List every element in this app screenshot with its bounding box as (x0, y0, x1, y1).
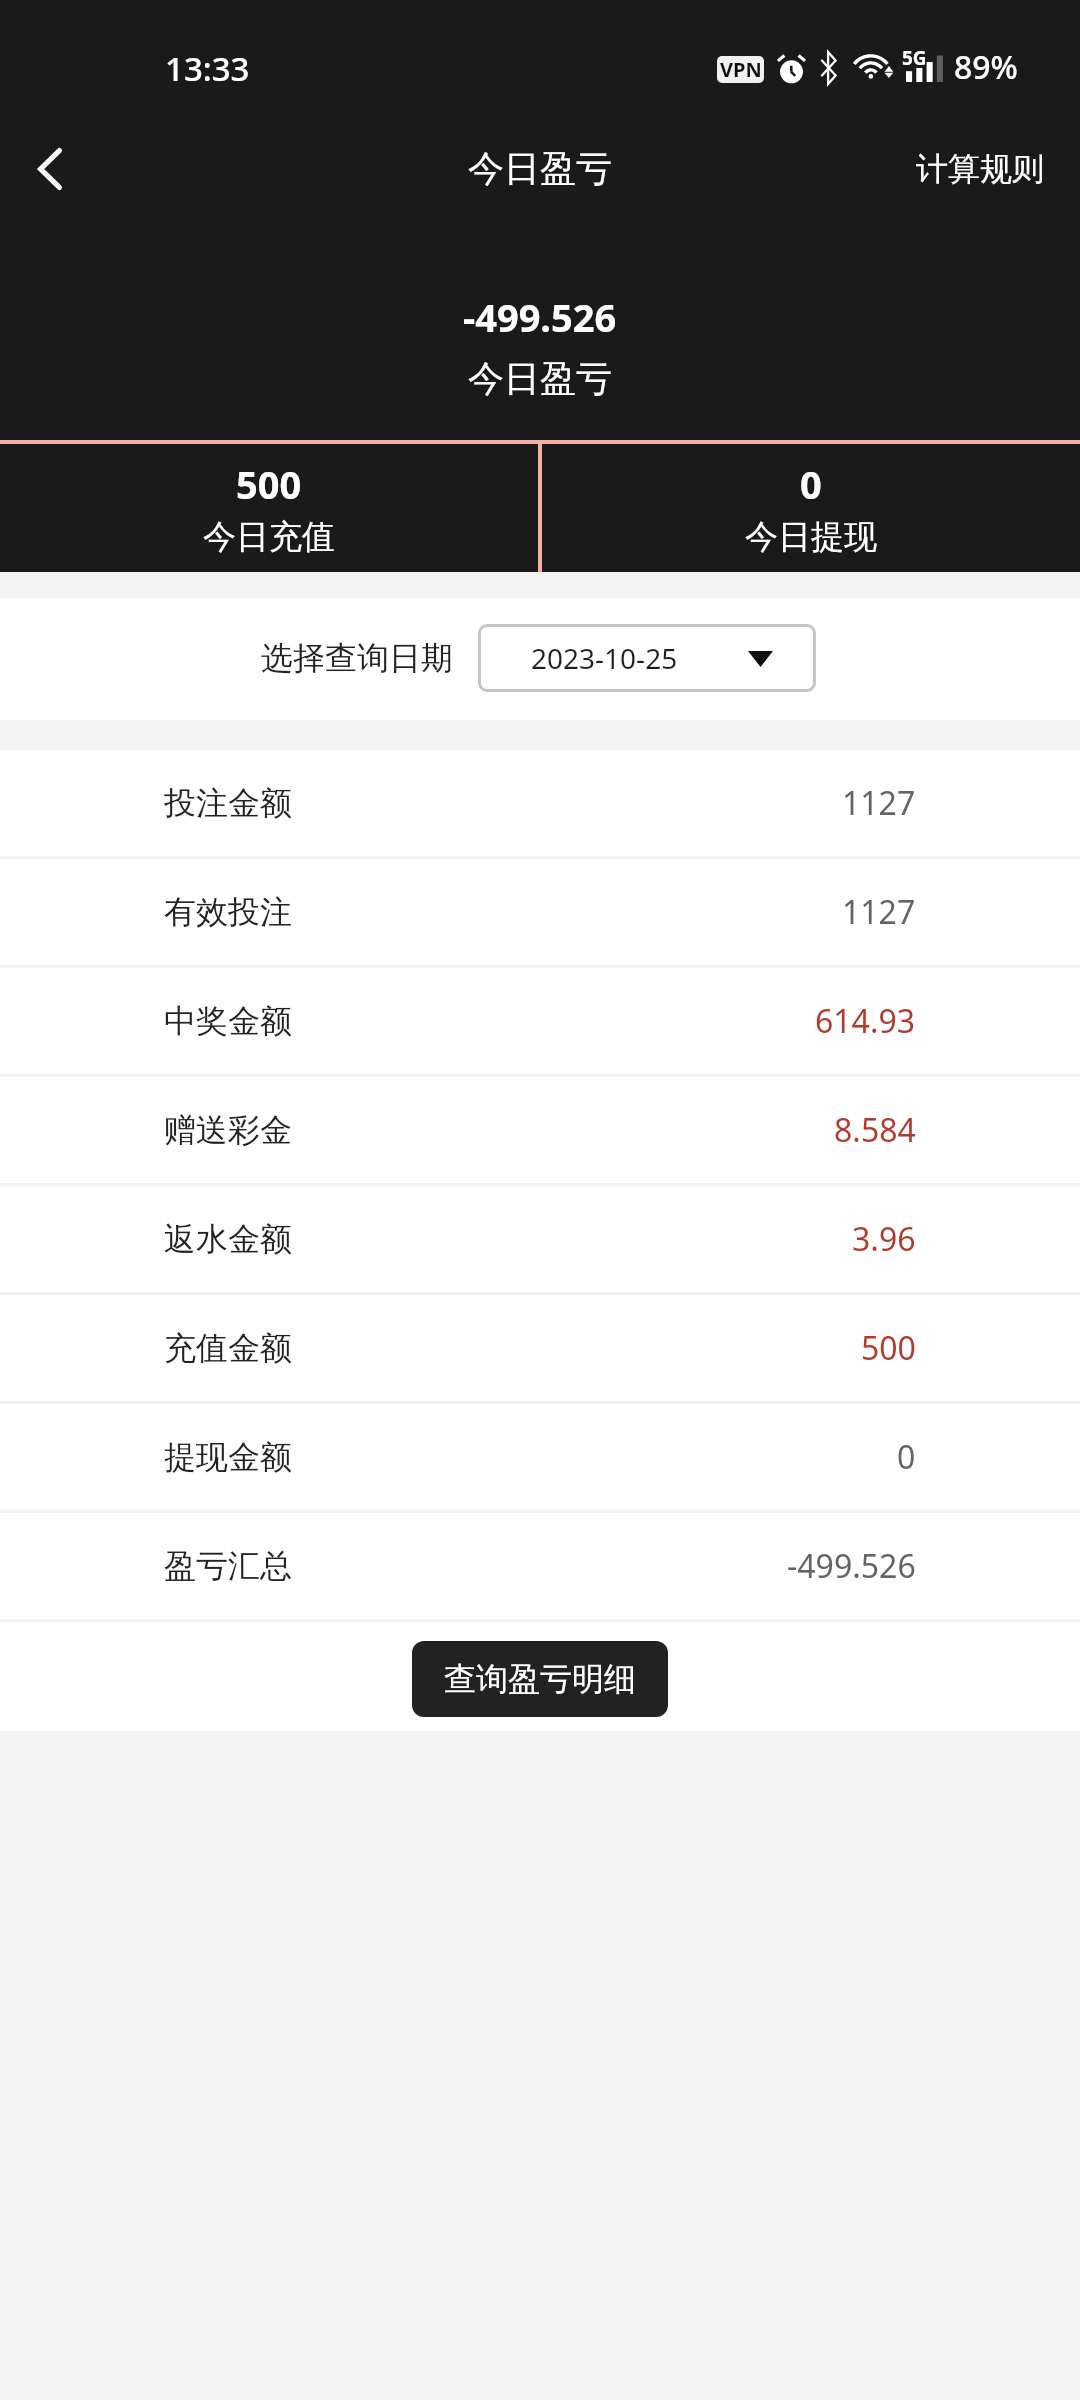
staticText: 投注金额 (164, 783, 292, 823)
staticText: 5G (902, 45, 927, 71)
staticText: 选择查询日期 (261, 638, 453, 678)
staticText: 1127 (842, 890, 916, 934)
staticText: 500 (861, 1326, 916, 1370)
staticText: 查询盈亏明细 (444, 1659, 636, 1699)
button[interactable]: 查询盈亏明细 (412, 1641, 668, 1717)
button[interactable]: 计算规则 (916, 149, 1044, 189)
staticText: 0 (897, 1435, 916, 1479)
staticText: 返水金额 (164, 1219, 292, 1259)
staticText: 提现金额 (164, 1437, 292, 1477)
button[interactable]: 有效投注 (0, 859, 1080, 965)
staticText: 中奖金额 (164, 1001, 292, 1041)
staticText: -499.526 (787, 1544, 916, 1588)
button[interactable]: 充值金额 (0, 1295, 1080, 1401)
staticText: 今日盈亏 (468, 146, 612, 191)
button[interactable]: 投注金额 (0, 750, 1080, 856)
staticText: 赠送彩金 (164, 1110, 292, 1150)
staticText: 614.93 (815, 999, 916, 1043)
button[interactable]: 中奖金额 (0, 968, 1080, 1074)
button[interactable]: Back (0, 110, 100, 228)
staticText: 1127 (842, 781, 916, 825)
staticText: 0 (800, 458, 822, 510)
button[interactable]: 0 (542, 443, 1080, 572)
staticText: VPN (720, 56, 762, 83)
staticText: 今日充值 (203, 516, 335, 558)
staticText: 13:33 (165, 46, 250, 91)
staticText: 今日盈亏 (468, 356, 612, 401)
staticText: 2023-10-25 (531, 639, 678, 677)
button[interactable]: 2023-10-25 (478, 624, 816, 692)
button[interactable]: 返水金额 (0, 1186, 1080, 1292)
staticText: -499.526 (463, 291, 617, 343)
staticText: 8.584 (834, 1108, 916, 1152)
staticText: 3.96 (852, 1217, 916, 1261)
staticText: 充值金额 (164, 1328, 292, 1368)
button[interactable]: 500 (0, 443, 538, 572)
staticText: 500 (236, 458, 302, 510)
button[interactable]: 赠送彩金 (0, 1077, 1080, 1183)
button[interactable]: 盈亏汇总 (0, 1513, 1080, 1619)
staticText: 盈亏汇总 (164, 1546, 292, 1586)
staticText: 有效投注 (164, 892, 292, 932)
button[interactable]: 提现金额 (0, 1404, 1080, 1510)
staticText: 今日提现 (745, 516, 877, 558)
staticText: 89% (954, 45, 1018, 89)
